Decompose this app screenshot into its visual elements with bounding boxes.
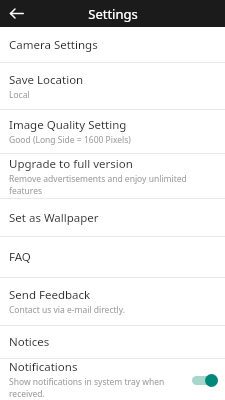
staticText: Upgrade to full version bbox=[9, 156, 133, 172]
staticText: FAQ bbox=[9, 249, 31, 265]
staticText: Set as Wallpaper bbox=[9, 210, 99, 226]
button[interactable]: Notifications bbox=[0, 359, 225, 400]
staticText: Save Location bbox=[9, 72, 84, 88]
staticText: Send Feedback bbox=[9, 287, 91, 303]
staticText: Local bbox=[9, 89, 30, 101]
button[interactable]: FAQ bbox=[0, 237, 225, 277]
button[interactable]: Camera Settings bbox=[0, 27, 225, 62]
button[interactable]: Notices bbox=[0, 326, 225, 358]
staticText: Good (Long Side = 1600 Pixels) bbox=[9, 134, 131, 146]
staticText: Show notifications in system tray when r… bbox=[9, 376, 192, 400]
staticText: Remove advertisements and enjoy unlimite… bbox=[9, 173, 218, 197]
button[interactable]: Send Feedback bbox=[0, 278, 225, 325]
staticText: Contact us via e-mail directly. bbox=[9, 304, 126, 316]
button[interactable]: Set as Wallpaper bbox=[0, 199, 225, 236]
staticText: Camera Settings bbox=[9, 37, 98, 53]
button[interactable]: Image Quality Setting bbox=[0, 110, 225, 153]
button[interactable]: Save Location bbox=[0, 63, 225, 109]
button[interactable]: Back bbox=[0, 0, 32, 27]
staticText: Settings bbox=[88, 5, 138, 23]
staticText: Image Quality Setting bbox=[9, 117, 127, 133]
staticText: Notices bbox=[9, 334, 50, 350]
staticText: Notifications bbox=[9, 359, 78, 375]
button[interactable]: Upgrade to full version bbox=[0, 154, 225, 198]
